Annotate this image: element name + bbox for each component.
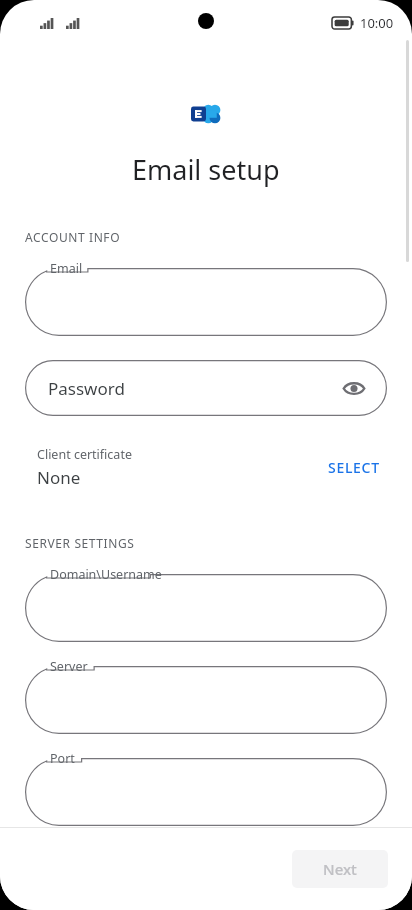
button[interactable]: Next	[292, 850, 388, 888]
button[interactable]: Email	[25, 268, 387, 336]
button[interactable]: Server	[25, 666, 387, 734]
staticText: SERVER SETTINGS	[25, 535, 135, 551]
staticText: Domain\Username	[50, 566, 162, 583]
staticText: Password	[48, 377, 125, 400]
button[interactable]: Domain\Username	[25, 574, 387, 642]
staticText: Server	[50, 658, 88, 675]
staticText: ACCOUNT INFO	[25, 229, 121, 245]
button[interactable]: Port	[25, 758, 387, 826]
staticText: SELECT	[328, 458, 380, 477]
staticText: Port	[50, 750, 75, 767]
button[interactable]: Password	[25, 360, 387, 416]
staticText: Email setup	[132, 151, 280, 188]
staticText: 10:00	[360, 14, 394, 32]
button[interactable]: Client certificate	[0, 442, 412, 493]
button[interactable]: Show password	[338, 372, 370, 404]
button[interactable]: SELECT	[322, 452, 386, 483]
staticText: None	[37, 466, 81, 489]
staticText: Email	[50, 260, 83, 277]
staticText: Client certificate	[37, 446, 132, 463]
staticText: Next	[323, 859, 357, 879]
